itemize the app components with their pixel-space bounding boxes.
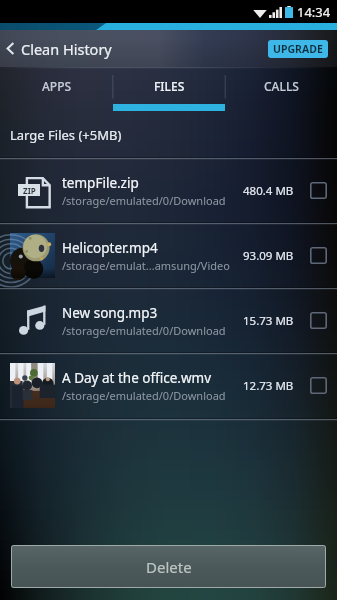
staticText: tempFile.zip: [62, 174, 139, 192]
staticText: /storage/emulated/0/Download: [62, 323, 226, 338]
staticText: 93.09 MB: [243, 248, 294, 264]
staticText: 15.73 MB: [243, 313, 294, 329]
staticText: Clean History: [21, 39, 112, 59]
staticText: 12.73 MB: [243, 378, 294, 394]
staticText: Helicopter.mp4: [62, 239, 158, 257]
staticText: /storage/emulated/0/Download: [62, 193, 226, 208]
staticText: Delete: [146, 557, 192, 577]
staticText: A Day at the office.wmv: [62, 369, 211, 387]
staticText: Large Files (+5MB): [10, 126, 122, 144]
staticText: New song.mp3: [62, 304, 158, 322]
staticText: APPS: [42, 78, 72, 94]
other: Back: [6, 42, 15, 55]
button[interactable]: CALLS: [225, 67, 337, 112]
staticText: /storage/emulated/0/Download: [62, 388, 226, 403]
button[interactable]: Select tempFile.zip: [310, 182, 327, 199]
staticText: /storage/emulat...amsung/Video: [62, 258, 230, 273]
button[interactable]: New song.mp3: [0, 288, 337, 353]
staticText: 14:34: [297, 3, 331, 21]
button[interactable]: Select New song.mp3: [310, 312, 327, 329]
button[interactable]: Select A Day at the office.wmv: [310, 377, 327, 394]
staticText: 480.4 MB: [243, 183, 294, 199]
button[interactable]: Back: [0, 30, 122, 67]
button[interactable]: A Day at the office.wmv: [0, 353, 337, 418]
staticText: CALLS: [264, 78, 299, 94]
staticText: UPGRADE: [273, 42, 323, 56]
button[interactable]: FILES: [113, 67, 225, 112]
button[interactable]: ZIP: [0, 158, 337, 223]
button[interactable]: APPS: [0, 67, 113, 112]
button[interactable]: Select Helicopter.mp4: [310, 247, 327, 264]
button[interactable]: Delete: [11, 545, 326, 588]
button[interactable]: Helicopter.mp4: [0, 223, 337, 288]
button[interactable]: UPGRADE: [268, 40, 328, 58]
staticText: FILES: [154, 78, 185, 94]
staticText: ZIP: [23, 185, 36, 196]
